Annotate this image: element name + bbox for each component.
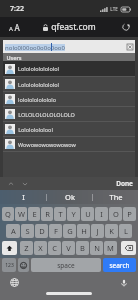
staticText: M — [107, 243, 114, 253]
button[interactable]: G — [63, 224, 76, 238]
button[interactable]: J — [91, 224, 104, 238]
button[interactable]: Key — [2, 241, 17, 255]
staticText: Ok — [65, 192, 75, 202]
button[interactable]: W — [15, 207, 27, 221]
staticText: F — [54, 226, 58, 236]
button[interactable]: Done — [111, 177, 138, 190]
button[interactable]: M — [104, 241, 117, 255]
staticText: A — [9, 25, 13, 33]
staticText: P — [127, 209, 132, 219]
staticText: search — [109, 261, 130, 270]
staticText: Z — [24, 243, 29, 253]
button[interactable]: P — [123, 207, 136, 221]
staticText: R — [45, 209, 50, 219]
button[interactable]: I — [0, 190, 46, 204]
button[interactable]: space — [31, 258, 101, 272]
staticText: D — [39, 226, 45, 236]
button[interactable]: F — [49, 224, 62, 238]
button[interactable]: V — [62, 241, 75, 255]
button[interactable]: C — [48, 241, 61, 255]
button[interactable]: Z — [20, 241, 33, 255]
staticText: Done — [116, 179, 133, 188]
staticText: lolololololololo — [18, 96, 56, 103]
button[interactable]: O — [109, 207, 122, 221]
button[interactable]: Lolololololool — [3, 122, 135, 136]
staticText: K — [109, 226, 114, 236]
button[interactable]: N — [90, 241, 103, 255]
button[interactable]: LOLOLOLOLOLOLOLO — [3, 107, 135, 121]
staticText: I — [100, 209, 103, 219]
staticText: Users — [6, 54, 22, 61]
staticText: Q — [5, 209, 11, 219]
staticText: C — [52, 243, 57, 253]
button[interactable]: Y — [67, 207, 80, 221]
staticText: J — [96, 226, 99, 236]
staticText: 123 — [5, 262, 14, 269]
staticText: Lolololololool — [18, 126, 53, 133]
button[interactable]: lolololololololo — [3, 92, 135, 106]
button[interactable]: Key — [121, 241, 136, 255]
button[interactable]: Emoji — [18, 258, 29, 272]
staticText: V — [66, 243, 71, 253]
button[interactable]: Q — [2, 207, 14, 221]
button[interactable]: The — [93, 190, 138, 204]
staticText: T — [58, 209, 63, 219]
button[interactable]: I — [95, 207, 108, 221]
button[interactable]: U — [81, 207, 94, 221]
staticText: LOLOLOLOLOLOLOLO — [18, 111, 75, 118]
button[interactable]: L — [119, 224, 132, 238]
button[interactable]: Lolololololololol — [3, 77, 135, 91]
staticText: S — [25, 226, 30, 236]
staticText: A — [14, 22, 20, 33]
staticText: Lolololololololol — [18, 65, 59, 72]
staticText: O — [113, 209, 119, 219]
button[interactable]: qfeast.com — [43, 21, 96, 33]
button[interactable]: R — [41, 207, 53, 221]
button[interactable]: Ok — [47, 190, 92, 204]
staticText: W — [18, 209, 25, 219]
button[interactable]: nolo0l00oo0o0o0oo0 — [3, 40, 135, 53]
button[interactable]: Next field — [19, 178, 30, 189]
staticText: Y — [71, 209, 76, 219]
button[interactable]: B — [76, 241, 89, 255]
staticText: Lolololololololol — [18, 81, 59, 88]
button[interactable]: 123 — [2, 258, 16, 272]
button[interactable]: Lolololololololol — [3, 61, 135, 76]
button[interactable]: Clear search — [124, 41, 135, 52]
button[interactable]: D — [35, 224, 48, 238]
staticText: X — [38, 243, 43, 253]
button[interactable]: Change keyboard language — [8, 276, 21, 289]
staticText: The — [109, 192, 123, 202]
button[interactable]: A — [6, 224, 20, 238]
staticText: Wowowowowowowow — [18, 141, 76, 148]
staticText: A — [11, 226, 16, 236]
staticText: LTE — [110, 6, 118, 12]
staticText: E — [32, 209, 37, 219]
staticText: U — [85, 209, 91, 219]
staticText: L — [124, 226, 128, 236]
button[interactable]: Dictation — [117, 276, 130, 289]
button[interactable]: K — [105, 224, 118, 238]
staticText: B — [80, 243, 85, 253]
button[interactable]: Previous field — [5, 178, 16, 189]
staticText: space — [57, 261, 75, 270]
button[interactable]: Wowowowowowowow — [3, 137, 135, 151]
button[interactable]: S — [21, 224, 34, 238]
staticText: N — [94, 243, 100, 253]
staticText: nolo0l00oo0o0o0oo0 — [5, 44, 65, 51]
button[interactable]: search — [103, 258, 136, 272]
staticText: H — [81, 226, 87, 236]
button[interactable]: Reload page — [120, 21, 132, 33]
button[interactable]: T — [54, 207, 66, 221]
button[interactable]: E — [28, 207, 40, 221]
staticText: G — [67, 226, 73, 236]
staticText: 7:22 — [10, 4, 24, 14]
button[interactable]: H — [77, 224, 90, 238]
staticText: qfeast.com — [51, 21, 96, 33]
staticText: I — [22, 192, 25, 202]
button[interactable]: X — [34, 241, 47, 255]
button[interactable]: Text size options — [7, 20, 22, 35]
